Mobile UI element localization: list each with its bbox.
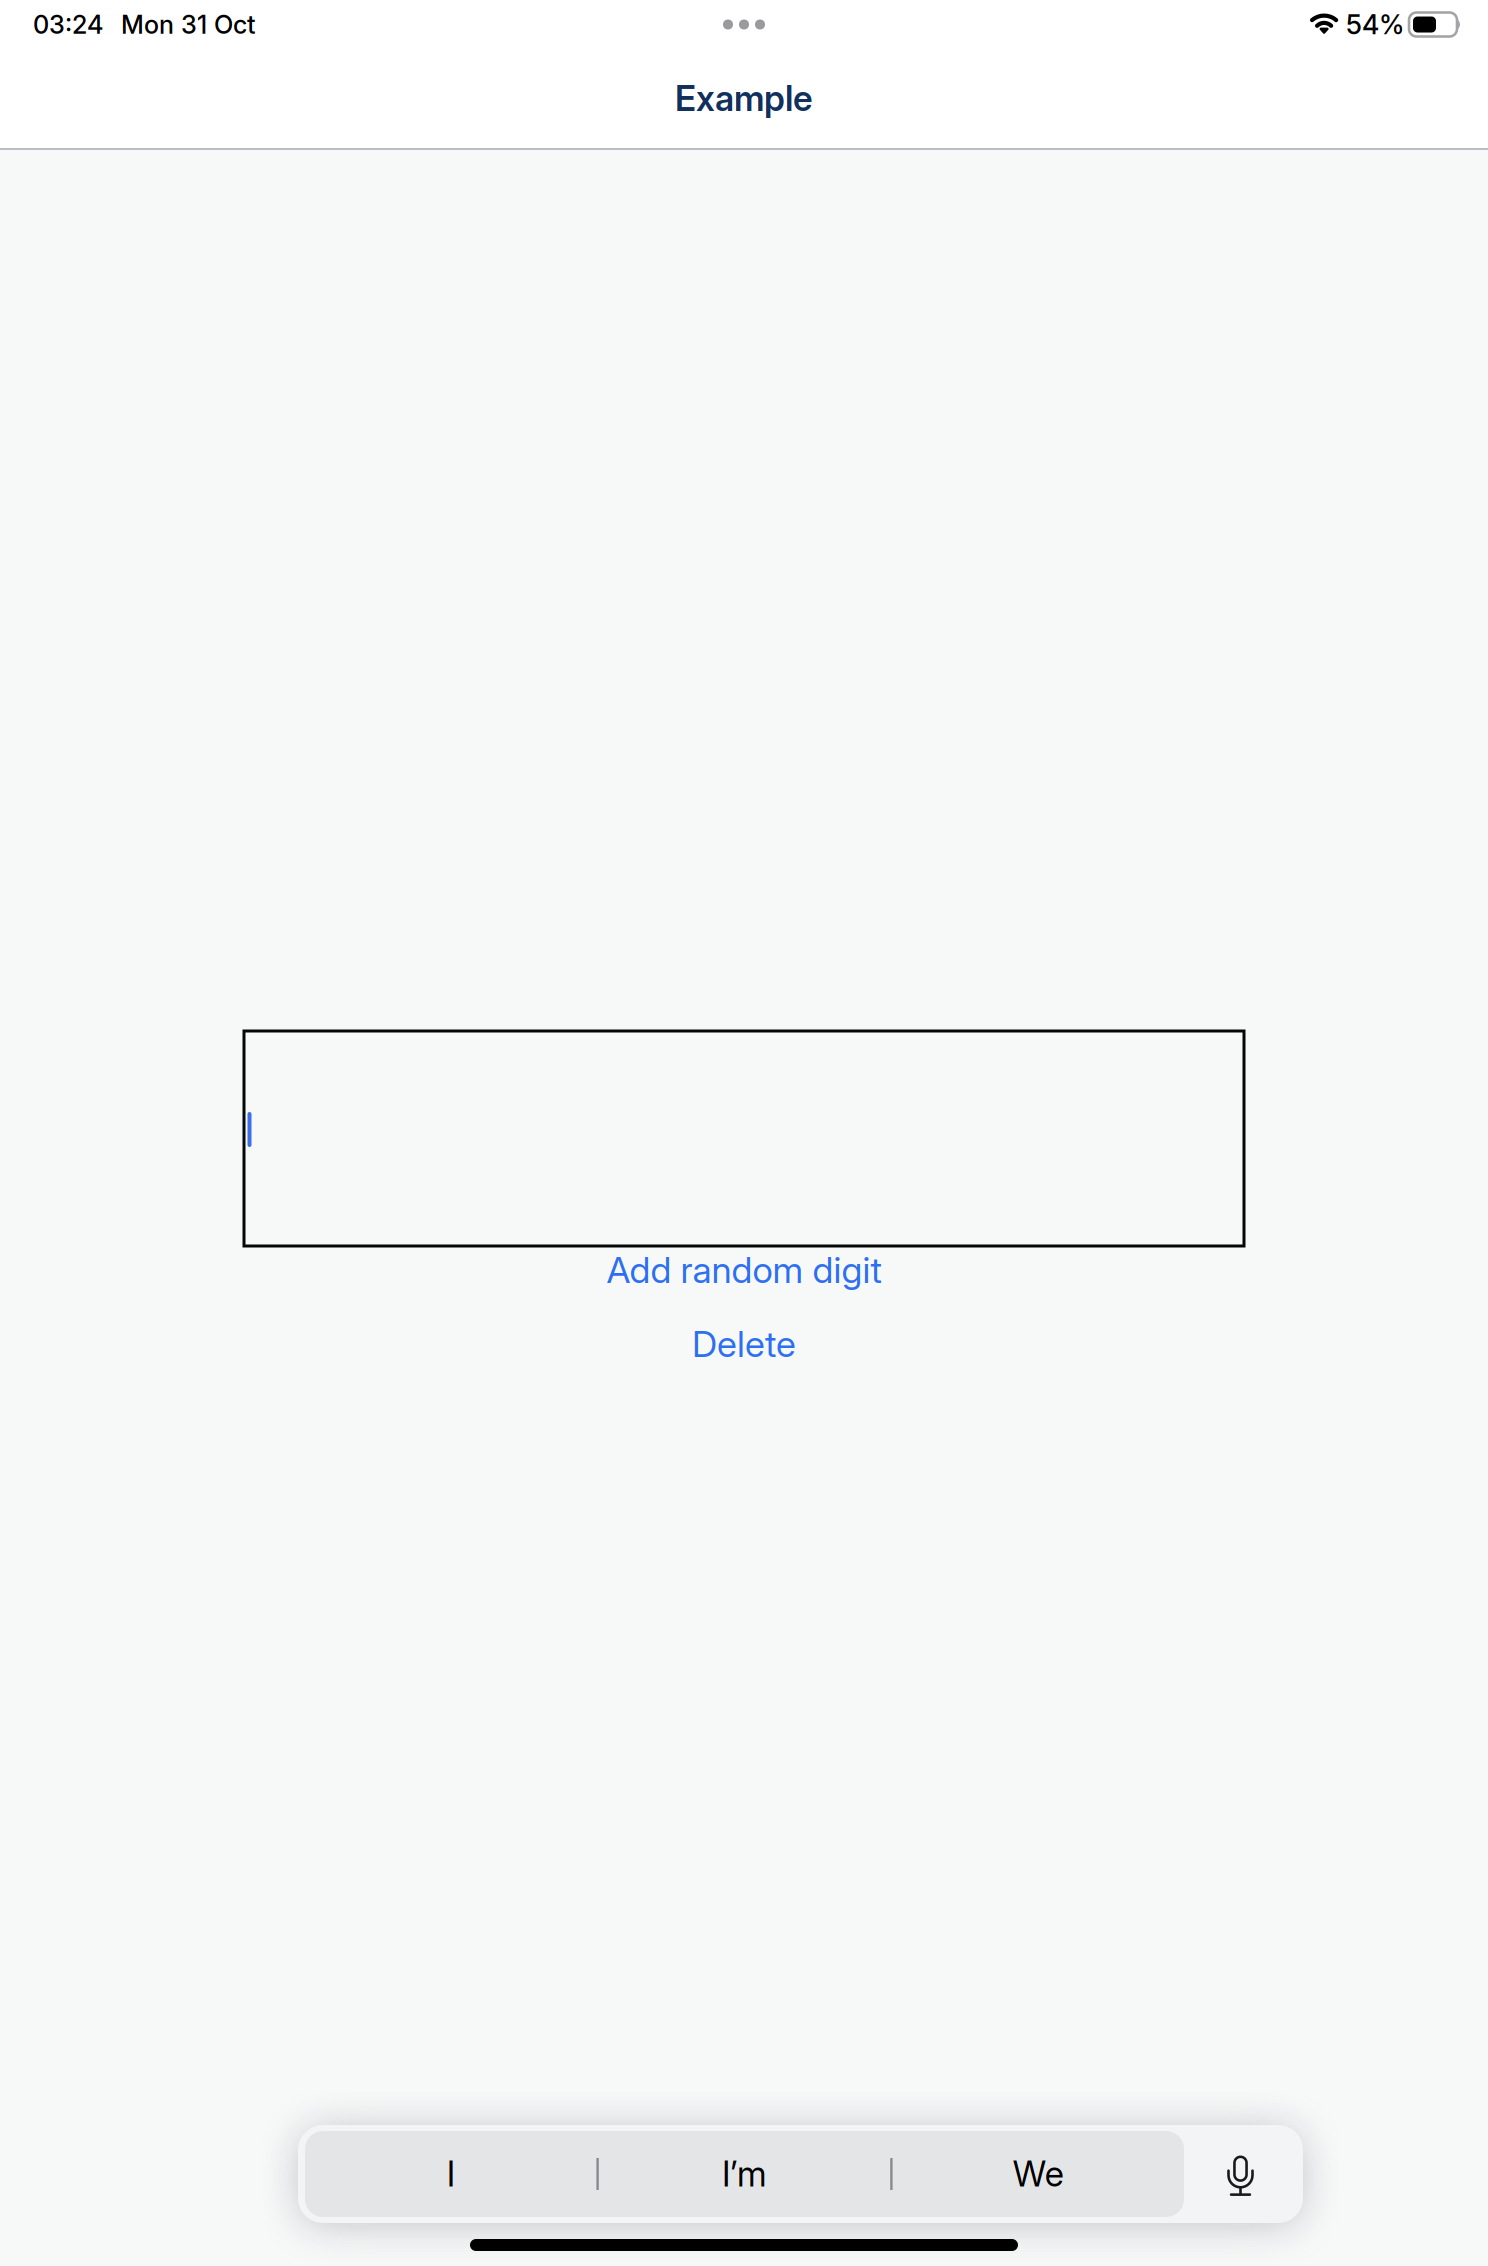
staticText: I’m: [722, 2153, 767, 2195]
staticText: Mon 31 Oct: [121, 9, 256, 40]
button[interactable]: Dictation: [1184, 2131, 1297, 2217]
staticText: 54%: [1346, 8, 1404, 41]
button[interactable]: We: [893, 2131, 1184, 2217]
staticText: Delete: [692, 1322, 796, 1366]
button[interactable]: I: [305, 2131, 596, 2217]
button[interactable]: Add random digit: [0, 1246, 1488, 1294]
staticText: 03:24: [33, 9, 103, 40]
staticText: Add random digit: [606, 1248, 881, 1292]
button[interactable]: Delete: [0, 1317, 1488, 1371]
staticText: Example: [675, 77, 813, 119]
staticText: We: [1013, 2153, 1064, 2195]
staticText: I: [447, 2153, 455, 2195]
button[interactable]: I’m: [599, 2131, 890, 2217]
button[interactable]: Text field: [244, 1031, 1244, 1246]
